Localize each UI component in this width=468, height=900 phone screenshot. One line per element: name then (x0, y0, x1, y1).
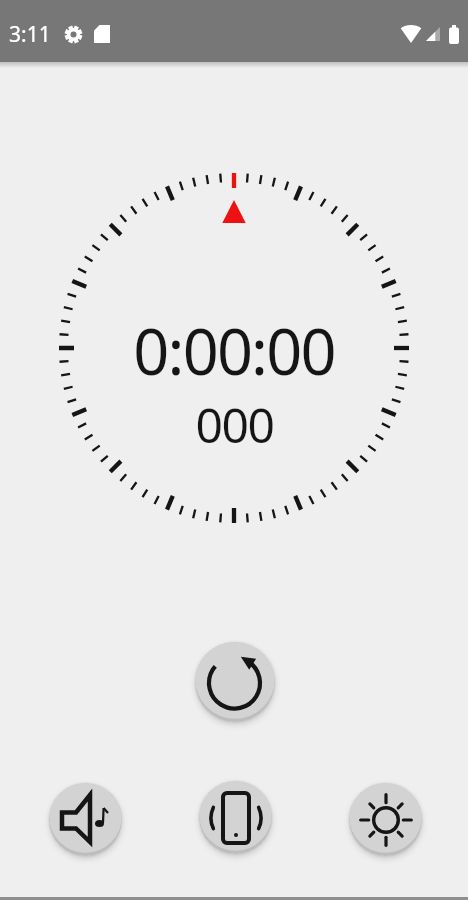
staticText: 3:11 (9, 20, 51, 49)
button[interactable] (199, 781, 272, 854)
staticText: 0:00:00 (133, 308, 335, 378)
staticText: 000 (195, 392, 274, 444)
button[interactable] (49, 783, 122, 856)
button[interactable] (349, 783, 422, 856)
button[interactable] (195, 642, 275, 722)
